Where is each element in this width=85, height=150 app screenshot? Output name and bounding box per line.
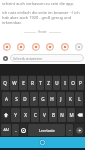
staticText: O <box>71 80 75 86</box>
staticText: Q <box>3 80 7 86</box>
button[interactable]: Add emoji <box>1 54 9 62</box>
button[interactable]: P <box>77 76 84 90</box>
staticText: Heute <box>38 30 47 34</box>
button[interactable]: Reaction <box>2 42 11 51</box>
button[interactable]: Y <box>11 108 20 122</box>
button[interactable]: F <box>30 92 38 106</box>
staticText: scheint auch vorkassen zu sein die app. <box>2 1 74 6</box>
staticText: X <box>24 112 27 118</box>
staticText: I <box>64 80 66 86</box>
staticText: . <box>69 127 71 133</box>
button[interactable]: J <box>57 92 65 106</box>
button[interactable]: Reaction <box>16 42 25 51</box>
staticText: V <box>43 112 46 118</box>
staticText: A&1 <box>3 128 10 132</box>
button[interactable]: Z <box>45 76 52 90</box>
button[interactable]: Settings <box>20 124 27 136</box>
staticText: K <box>69 96 72 102</box>
button[interactable]: Back <box>37 137 48 148</box>
button[interactable]: Q <box>1 76 9 90</box>
button[interactable]: T <box>37 76 44 90</box>
staticText: U <box>55 80 59 86</box>
button[interactable]: Reaction <box>31 42 40 51</box>
staticText: P <box>79 80 82 86</box>
button[interactable]: Backspace <box>76 108 84 122</box>
button[interactable]: O <box>69 76 76 90</box>
staticText: Y <box>14 112 17 118</box>
button[interactable]: Reaction <box>60 42 69 51</box>
staticText: J <box>60 96 62 102</box>
button[interactable]: D <box>21 92 29 106</box>
staticText: E <box>22 80 25 86</box>
button[interactable]: W <box>10 76 18 90</box>
staticText: A <box>5 96 8 102</box>
staticText: , <box>15 127 17 133</box>
staticText: N <box>60 112 64 118</box>
staticText: Z <box>47 80 50 86</box>
button[interactable]: B <box>49 108 57 122</box>
staticText: S <box>15 96 18 102</box>
staticText: H <box>50 96 54 102</box>
button[interactable]: Enter <box>74 124 84 136</box>
button[interactable]: C <box>31 108 39 122</box>
staticText: B <box>52 112 55 118</box>
button[interactable]: X <box>21 108 30 122</box>
button[interactable]: A&1 <box>1 124 11 136</box>
button[interactable]: Reaction <box>45 42 54 51</box>
button[interactable]: S <box>12 92 20 106</box>
button[interactable]: E <box>19 76 27 90</box>
staticText: D <box>23 96 27 102</box>
staticText: R <box>31 80 34 86</box>
button[interactable]: A <box>2 92 11 106</box>
staticText: L <box>78 96 81 102</box>
button[interactable]: M <box>67 108 75 122</box>
button[interactable]: Reaction <box>74 42 83 51</box>
staticText: Leertaste <box>39 128 55 133</box>
button[interactable]: U <box>53 76 60 90</box>
button[interactable]: N <box>58 108 66 122</box>
staticText: M <box>69 112 74 118</box>
button[interactable]: H <box>48 92 56 106</box>
staticText: F <box>33 96 36 102</box>
button[interactable]: , <box>12 124 19 136</box>
staticText: Schreib antworten <box>13 56 43 61</box>
button[interactable]: G <box>39 92 47 106</box>
staticText: C <box>34 112 37 118</box>
button[interactable]: K <box>66 92 74 106</box>
button[interactable]: I <box>61 76 68 90</box>
button[interactable]: L <box>75 92 83 106</box>
staticText: T <box>39 80 42 86</box>
staticText: W <box>12 80 17 86</box>
button[interactable]: R <box>28 76 36 90</box>
button[interactable]: Schreib antworten <box>10 54 84 62</box>
button[interactable]: V <box>40 108 48 122</box>
staticText: G <box>41 96 45 102</box>
staticText: ich nutz einfach die seite im browser ~/… <box>2 10 80 25</box>
button[interactable]: Leertaste <box>28 124 65 136</box>
button[interactable]: Shift <box>1 108 10 122</box>
button[interactable]: . <box>66 124 73 136</box>
